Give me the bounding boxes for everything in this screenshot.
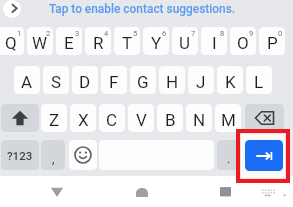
staticText: P	[267, 33, 278, 53]
button[interactable]: Home	[122, 176, 162, 202]
staticText: 2	[46, 29, 51, 38]
staticText: ?123	[7, 149, 33, 162]
staticText: 9	[249, 29, 254, 38]
staticText: G	[137, 72, 149, 92]
button[interactable]: Enter	[245, 140, 283, 171]
staticText: O	[237, 33, 249, 53]
staticText: .	[227, 151, 231, 166]
button[interactable]: R	[85, 27, 111, 55]
button[interactable]: Backspace	[245, 104, 284, 132]
staticText: ,	[52, 151, 55, 166]
button[interactable]: Recents	[206, 176, 246, 202]
button[interactable]: ,	[41, 140, 65, 170]
button[interactable]: I	[201, 27, 227, 55]
staticText: I	[212, 33, 217, 53]
button[interactable]: S	[43, 66, 69, 94]
button[interactable]: D	[72, 66, 98, 94]
staticText: B	[165, 110, 176, 130]
staticText: 8	[220, 29, 225, 38]
staticText: W	[32, 33, 48, 53]
staticText: 3	[75, 29, 80, 38]
staticText: Q	[5, 33, 17, 53]
button[interactable]: Y	[143, 27, 169, 55]
button[interactable]: L	[246, 66, 272, 94]
button[interactable]: Back	[37, 176, 77, 202]
staticText: J	[196, 72, 206, 92]
button[interactable]: E	[56, 27, 82, 55]
staticText: Z	[49, 110, 60, 130]
button[interactable]: W	[27, 27, 53, 55]
button[interactable]: A	[14, 66, 40, 94]
staticText: 4	[104, 29, 109, 38]
staticText: F	[109, 72, 119, 92]
staticText: A	[21, 72, 33, 92]
staticText: T	[122, 33, 133, 53]
staticText: 0	[278, 29, 283, 38]
staticText: 6	[162, 29, 167, 38]
button[interactable]: J	[188, 66, 214, 94]
button[interactable]: M	[215, 104, 241, 132]
button[interactable]: .	[217, 140, 241, 170]
staticText: R	[93, 33, 104, 53]
staticText: H	[166, 72, 179, 92]
staticText: 1	[17, 29, 22, 38]
button[interactable]: Shift	[1, 104, 39, 132]
button[interactable]: F	[101, 66, 127, 94]
button[interactable]: Q	[0, 27, 24, 55]
staticText: N	[193, 110, 206, 130]
button[interactable]: Emoji	[69, 140, 97, 170]
staticText: C	[106, 110, 118, 130]
staticText: Tap to enable contact suggestions.	[49, 2, 236, 16]
button[interactable]: Expand suggestions	[3, 0, 21, 18]
staticText: S	[51, 72, 62, 92]
button[interactable]: P	[259, 27, 285, 55]
button[interactable]: H	[159, 66, 185, 94]
button[interactable]: Z	[41, 104, 67, 132]
button[interactable]: K	[217, 66, 243, 94]
button[interactable]: V	[128, 104, 154, 132]
button[interactable]: Tap to enable contact suggestions.	[49, 0, 293, 19]
button[interactable]: O	[230, 27, 256, 55]
staticText: D	[79, 72, 91, 92]
staticText: X	[78, 110, 89, 130]
staticText: Y	[151, 33, 162, 53]
button[interactable]: T	[114, 27, 140, 55]
button[interactable]: N	[186, 104, 212, 132]
staticText: 7	[191, 29, 196, 38]
button[interactable]: B	[157, 104, 183, 132]
button[interactable]: G	[130, 66, 156, 94]
button[interactable]: C	[99, 104, 125, 132]
button[interactable]: Change keyboard	[256, 176, 284, 202]
staticText: E	[64, 33, 74, 53]
staticText: M	[221, 110, 236, 130]
staticText: 5	[133, 29, 138, 38]
staticText: U	[179, 33, 191, 53]
button[interactable]: X	[70, 104, 96, 132]
staticText: V	[136, 110, 147, 130]
staticText: K	[225, 72, 236, 92]
button[interactable]: U	[172, 27, 198, 55]
staticText: L	[254, 72, 264, 92]
button[interactable]: ?123	[1, 140, 39, 170]
